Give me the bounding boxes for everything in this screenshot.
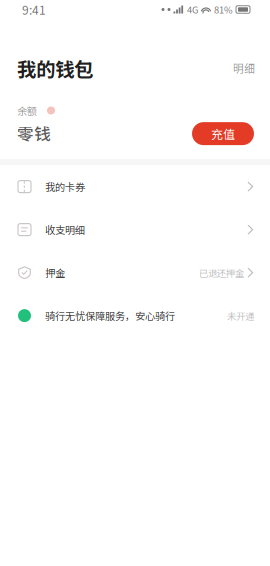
staticText: 充值 bbox=[211, 125, 235, 142]
staticText: 4G bbox=[187, 3, 198, 16]
button[interactable]: 押金 bbox=[0, 251, 270, 294]
staticText: 已退还押金 bbox=[199, 266, 244, 279]
staticText: 我的钱包 bbox=[17, 54, 93, 82]
button[interactable]: 我的卡券 bbox=[0, 165, 270, 208]
button[interactable]: 骑行无忧保障服务，安心骑行 bbox=[0, 294, 270, 337]
staticText: 我的卡券 bbox=[45, 179, 85, 194]
staticText: 骑行无忧保障服务，安心骑行 bbox=[45, 308, 175, 323]
staticText: 81% bbox=[214, 3, 233, 16]
staticText: 明细 bbox=[233, 60, 255, 76]
staticText: 零钱 bbox=[17, 121, 51, 145]
staticText: 未开通 bbox=[227, 309, 254, 322]
button[interactable]: 充值 bbox=[192, 122, 254, 145]
button[interactable]: 收支明细 bbox=[0, 208, 270, 251]
staticText: 收支明细 bbox=[45, 222, 85, 237]
staticText: 押金 bbox=[45, 265, 65, 280]
button[interactable]: 明细 bbox=[221, 53, 255, 83]
staticText: 9:41 bbox=[22, 1, 46, 18]
staticText: 余额 bbox=[17, 103, 37, 118]
